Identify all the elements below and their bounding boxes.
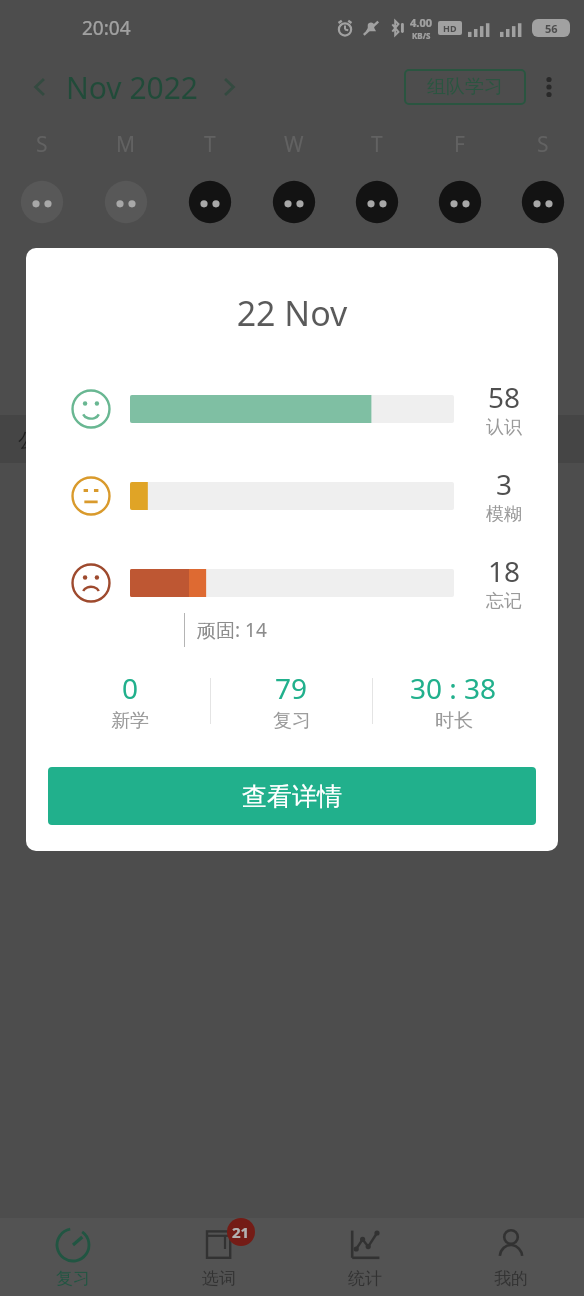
button[interactable]: 点击此处 (26, 559, 288, 588)
staticText: 分享墨墨使用心得最高可获 5,400 上限! (110, 789, 480, 818)
staticText: 统计 (348, 1268, 382, 1289)
staticText: 顽固: 14 (197, 617, 267, 643)
staticText: 选词 (202, 1268, 236, 1289)
staticText: 点击此处 (26, 559, 110, 585)
button[interactable]: 查看详情 (48, 767, 536, 825)
button[interactable]: 21 (146, 1218, 292, 1296)
staticText: 22 Nov (26, 290, 558, 336)
staticText: 每日签到的结束时间是 (26, 674, 236, 700)
staticText: 新学 (111, 709, 149, 733)
button[interactable]: 30 : 38 (373, 669, 534, 733)
staticText: KB/S (412, 30, 431, 41)
staticText: 查看详情 (242, 781, 342, 812)
staticText: 3 (496, 465, 513, 503)
button[interactable]: More options (526, 64, 572, 110)
staticText: 复习 (273, 709, 311, 733)
button[interactable]: 复习 (0, 1218, 146, 1296)
staticText: 我的 (494, 1268, 528, 1289)
staticText: HD (443, 22, 457, 34)
button[interactable]: Next month (207, 65, 251, 109)
button[interactable]: 79 (211, 669, 372, 733)
staticText: 0 (122, 669, 139, 707)
button[interactable]: 组队学习 (404, 69, 526, 105)
staticText: F (454, 130, 465, 159)
staticText: Nov 2022 (66, 67, 199, 108)
staticText: 21 (232, 1222, 250, 1242)
staticText: 教你这么规划GRE! (110, 559, 288, 588)
staticText: W (284, 130, 304, 159)
button[interactable]: 点击此处 (26, 789, 480, 818)
staticText: 20:04 (82, 15, 131, 41)
button[interactable]: 0 (50, 669, 210, 733)
staticText: 复习 (56, 1268, 90, 1289)
staticText: 56 (545, 21, 558, 36)
staticText: 第二天凌晨4点 (236, 674, 375, 703)
staticText: S (36, 130, 48, 159)
button[interactable]: Previous month (18, 65, 62, 109)
staticText: 79 (275, 669, 308, 707)
staticText: M (116, 130, 136, 159)
button[interactable]: 我的 (438, 1218, 584, 1296)
staticText: 时长 (435, 709, 473, 733)
staticText: 忘记 (486, 590, 522, 613)
staticText: 4.00 (410, 15, 432, 30)
staticText: 公告栏 | 你的UID: 24688823 (18, 426, 278, 453)
staticText: 墨墨头条 (26, 503, 122, 533)
staticText: 模糊 (486, 503, 522, 526)
staticText: 组队学习 (427, 75, 503, 99)
staticText: T (371, 130, 383, 159)
staticText: 58 (488, 378, 521, 416)
staticText: 18 (488, 552, 521, 590)
staticText: T (204, 130, 216, 159)
staticText: 30 : 38 (410, 669, 497, 707)
staticText: 认识 (486, 416, 522, 439)
staticText: 点击此处 (26, 789, 110, 815)
button[interactable]: 统计 (292, 1218, 438, 1296)
staticText: S (537, 130, 549, 159)
